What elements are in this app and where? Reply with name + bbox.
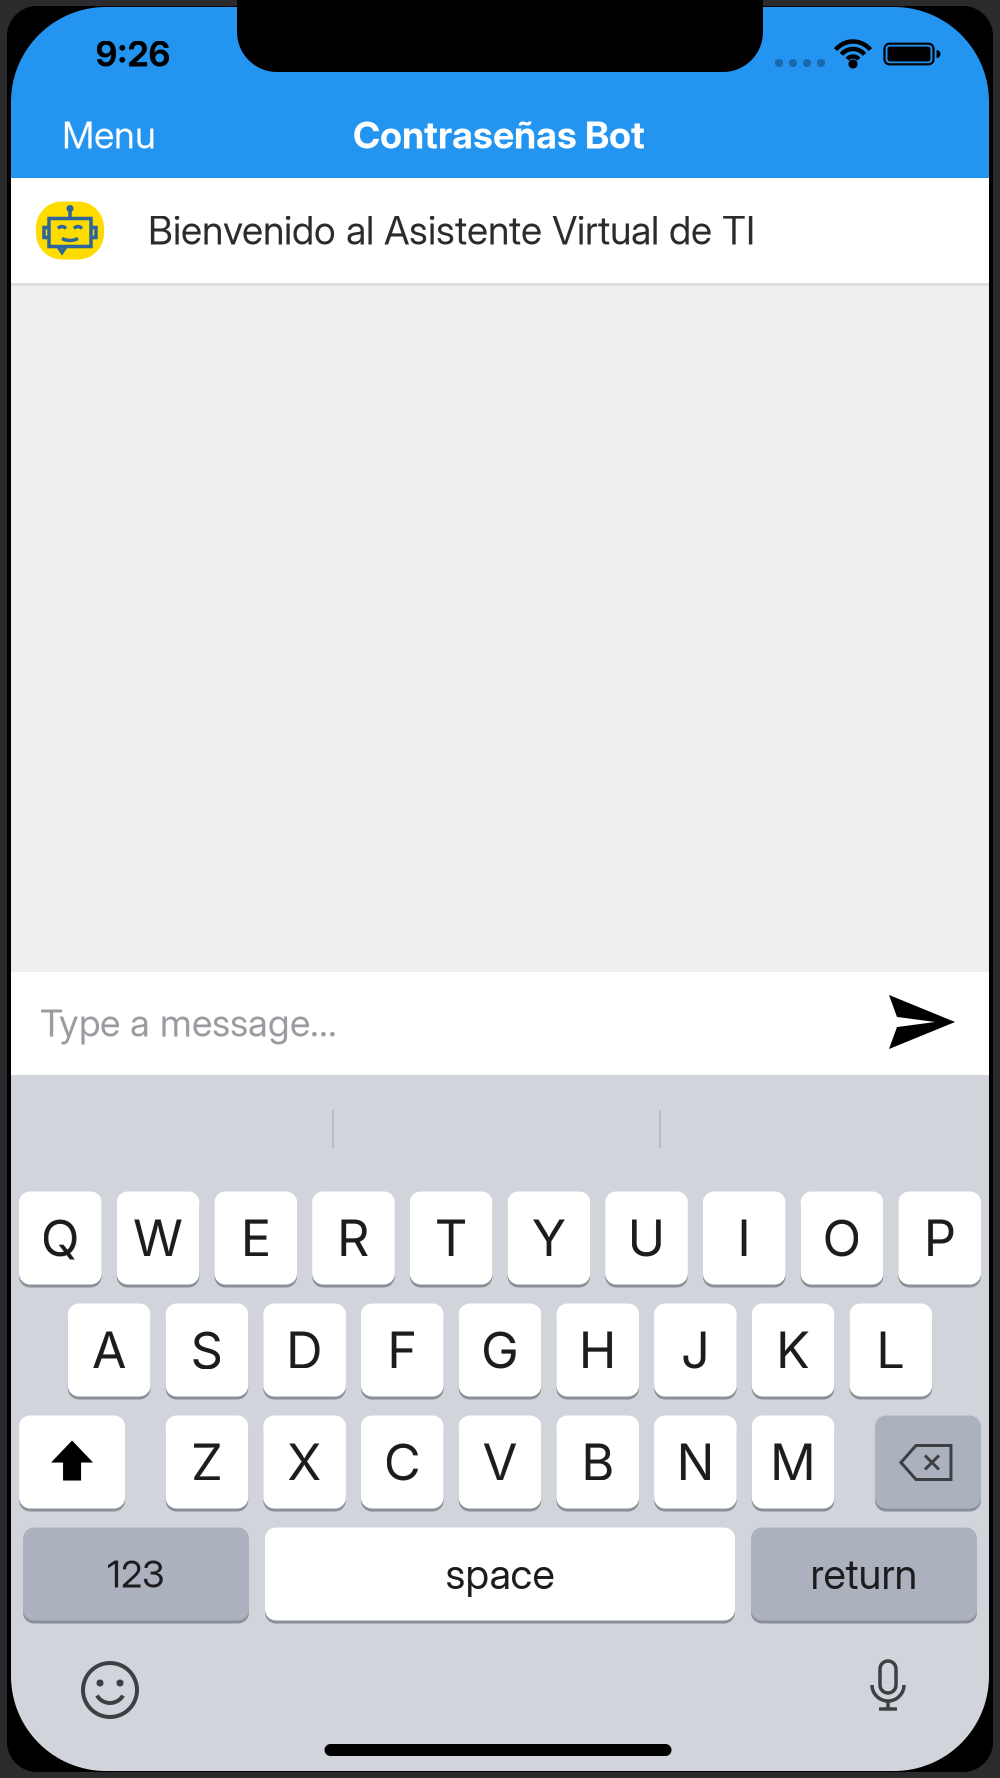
staticText: M [770,1432,816,1492]
button[interactable]: J [654,1302,737,1398]
staticText: space [445,1550,554,1598]
button[interactable]: Type a message... [40,971,860,1074]
staticText: D [286,1320,323,1380]
button[interactable] [875,1414,981,1510]
staticText: J [681,1320,710,1380]
button[interactable]: W [117,1190,199,1286]
button[interactable]: 123 [23,1526,249,1622]
button[interactable]: P [898,1190,981,1286]
staticText: B [581,1432,614,1492]
button[interactable]: V [459,1414,541,1510]
staticText: Type a message... [40,1001,337,1045]
staticText: I [737,1208,751,1268]
button[interactable]: space [265,1526,735,1622]
button[interactable]: T [410,1190,492,1286]
staticText: P [924,1208,956,1268]
button[interactable] [889,995,955,1049]
button[interactable]: D [263,1302,346,1398]
staticText: L [876,1320,905,1380]
staticText: A [92,1320,127,1380]
button[interactable]: E [214,1190,297,1286]
button[interactable]: Q [19,1190,102,1286]
staticText: Menu [62,113,156,157]
staticText: X [287,1432,322,1492]
button[interactable]: F [361,1302,444,1398]
staticText: R [337,1208,370,1268]
staticText: W [133,1208,183,1268]
button[interactable]: C [361,1414,444,1510]
button[interactable]: K [752,1302,834,1398]
staticText: Contraseñas Bot [353,113,645,157]
staticText: V [482,1432,517,1492]
button[interactable]: Menu [39,92,179,178]
staticText: S [190,1320,223,1380]
staticText: H [579,1320,617,1380]
staticText: 123 [107,1552,165,1596]
button[interactable]: L [849,1302,932,1398]
button[interactable]: O [801,1190,883,1286]
button[interactable]: I [703,1190,786,1286]
button[interactable]: M [752,1414,834,1510]
staticText: O [822,1208,861,1268]
button[interactable]: H [556,1302,639,1398]
staticText: G [481,1320,519,1380]
button[interactable]: Y [507,1190,590,1286]
staticText: F [387,1320,417,1380]
button[interactable]: B [556,1414,639,1510]
staticText: T [435,1208,468,1268]
staticText: return [810,1550,917,1598]
staticText: Y [532,1208,566,1268]
staticText: U [628,1208,666,1268]
staticText: N [676,1432,714,1492]
staticText: Q [41,1208,80,1268]
staticText: K [776,1320,810,1380]
button[interactable] [866,1657,910,1719]
staticText: 9:26 [95,34,170,74]
button[interactable] [79,1659,141,1721]
button[interactable]: return [751,1526,977,1622]
button[interactable] [19,1414,125,1510]
button[interactable]: A [68,1302,150,1398]
staticText: Bienvenido al Asistente Virtual de TI [148,208,755,253]
button[interactable]: Z [166,1414,248,1510]
button[interactable]: R [312,1190,395,1286]
button[interactable]: U [605,1190,688,1286]
button[interactable]: X [263,1414,346,1510]
staticText: Z [191,1432,223,1492]
staticText: C [384,1432,421,1492]
staticText: E [241,1208,271,1268]
button[interactable]: S [165,1302,248,1398]
button[interactable]: N [654,1414,737,1510]
button[interactable]: G [459,1302,541,1398]
